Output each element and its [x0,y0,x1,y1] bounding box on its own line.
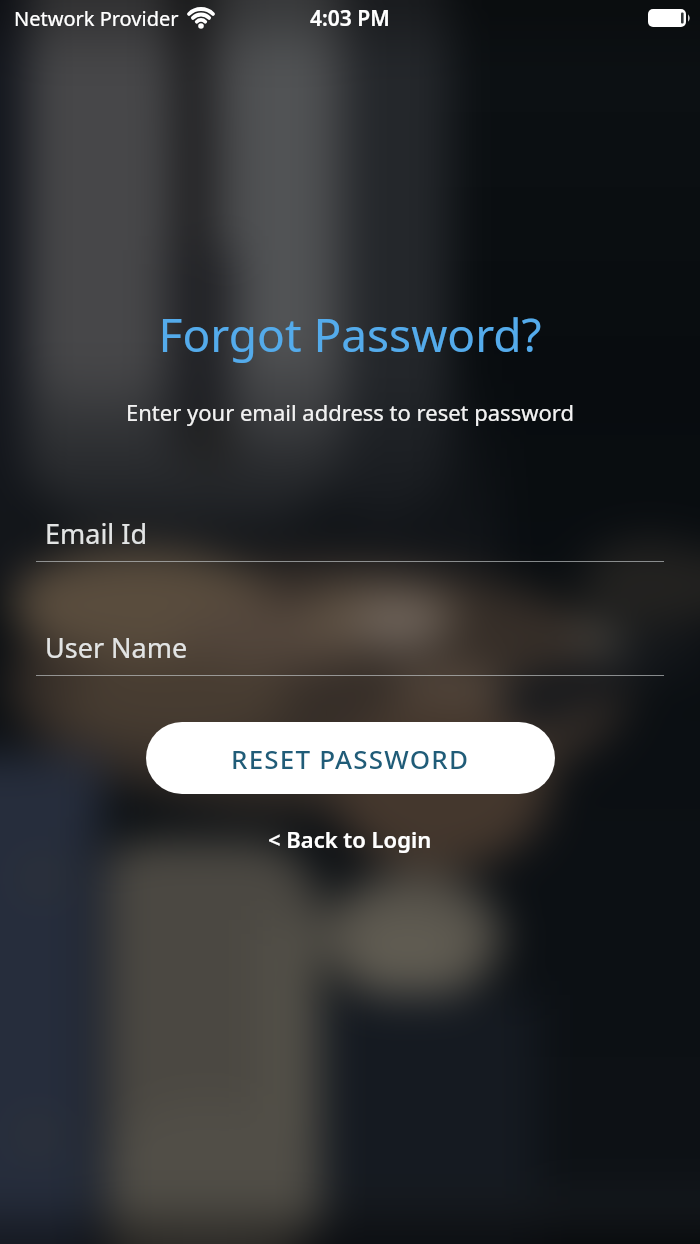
staticText: Forgot Password? [0,303,700,366]
button[interactable]: Email Id [0,515,700,562]
staticText: Network Provider [14,5,179,32]
staticText: Enter your email address to reset passwo… [0,397,700,427]
staticText: 4:03 PM [310,4,390,33]
button[interactable]: < Back to Login [258,818,442,860]
button[interactable]: RESET PASSWORD [146,722,555,794]
staticText: RESET PASSWORD [231,741,470,776]
staticText: Email Id [45,515,148,552]
staticText: < Back to Login [268,824,432,854]
button[interactable]: User Name [0,629,700,676]
staticText: User Name [45,629,188,666]
